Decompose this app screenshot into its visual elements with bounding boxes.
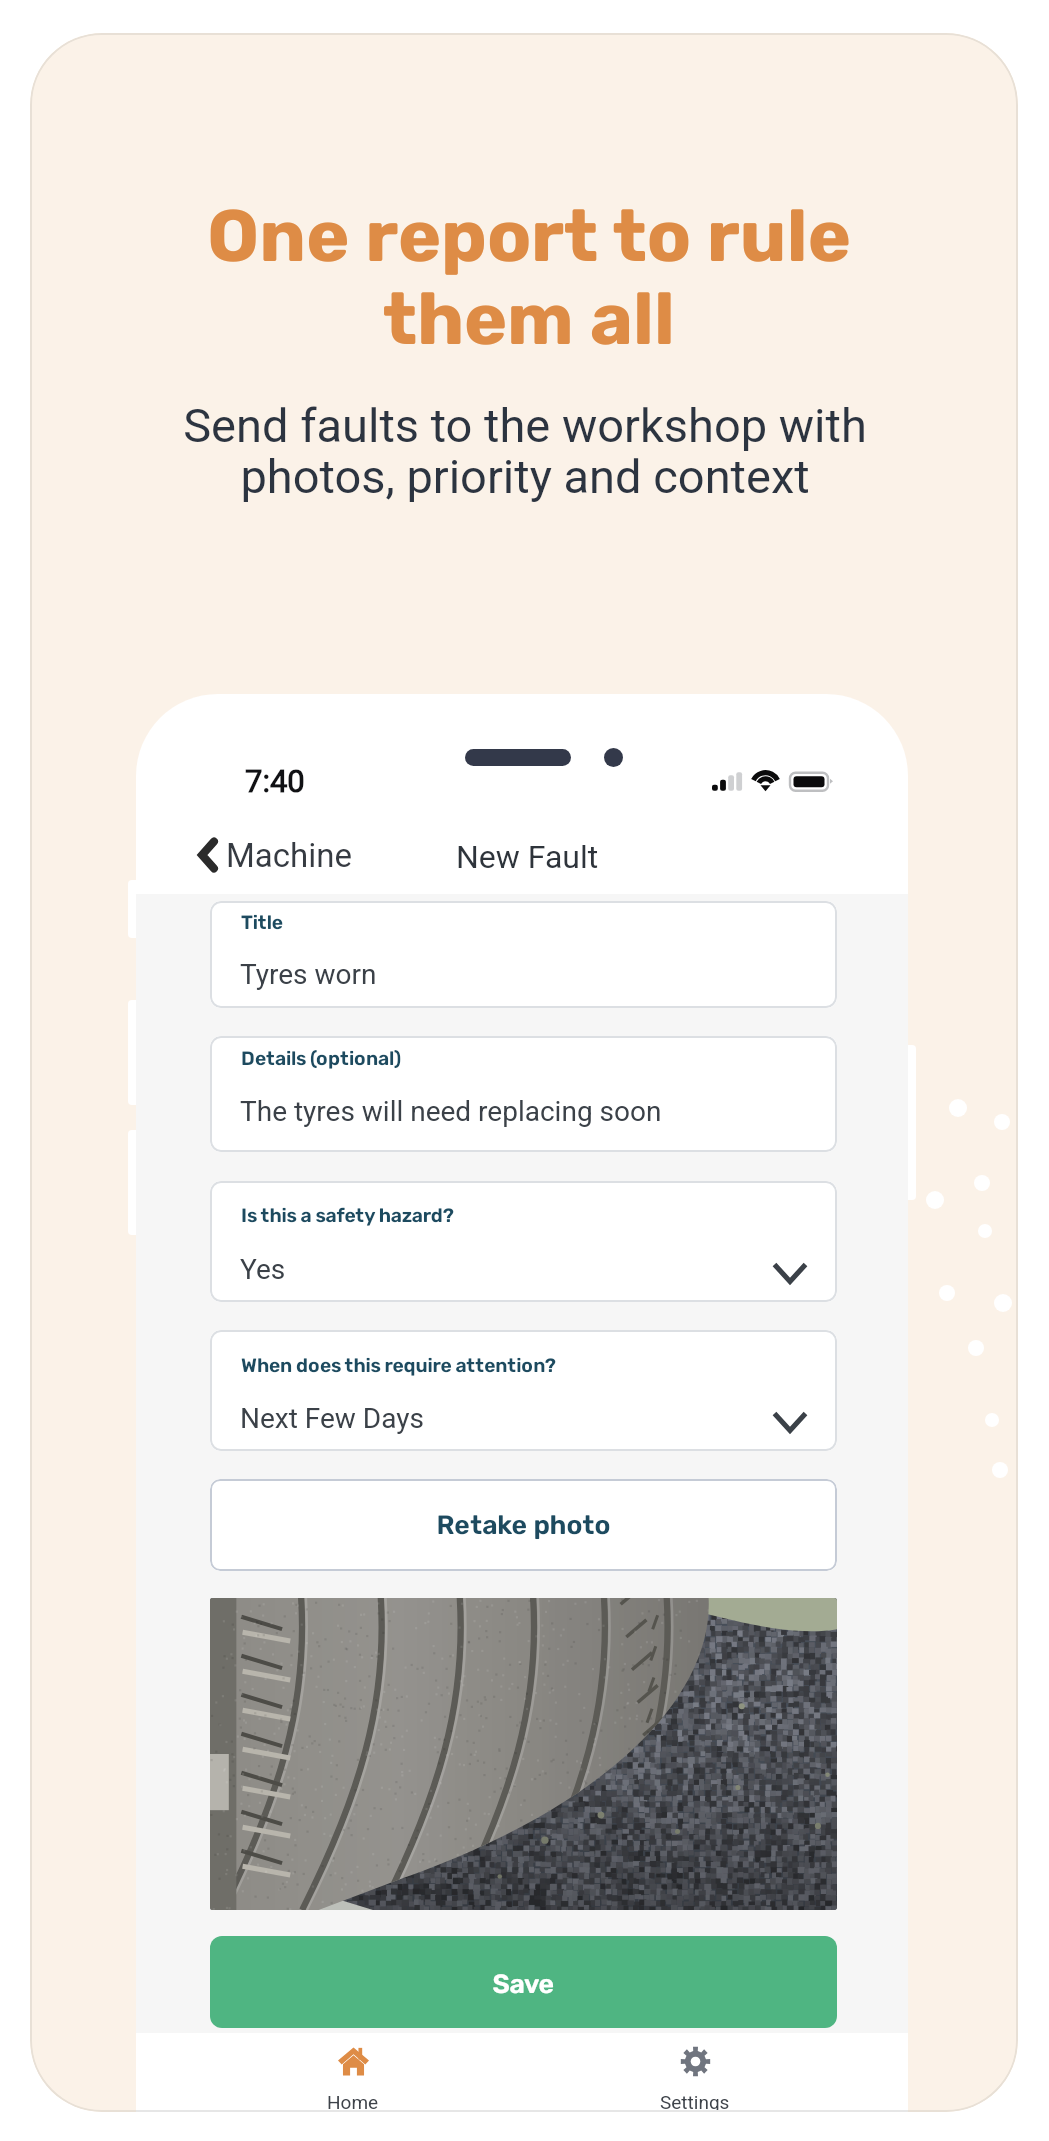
button[interactable]: Next Few Days bbox=[210, 1330, 837, 1451]
staticText: Machine bbox=[226, 836, 352, 875]
button[interactable]: Tyres worn bbox=[210, 901, 837, 1008]
staticText: New Fault bbox=[456, 838, 599, 876]
staticText: Home bbox=[327, 2091, 379, 2112]
button[interactable]: Home bbox=[268, 2040, 438, 2112]
staticText: Tyres worn bbox=[240, 958, 377, 991]
staticText: Settings bbox=[660, 2091, 730, 2112]
button[interactable]: Settings bbox=[610, 2040, 780, 2112]
button[interactable] bbox=[210, 1479, 837, 1571]
button[interactable]: Machine bbox=[190, 827, 358, 883]
staticText: Next Few Days bbox=[240, 1402, 424, 1435]
button[interactable]: Yes bbox=[210, 1181, 837, 1302]
other: Home bbox=[338, 2046, 369, 2077]
staticText: 7:40 bbox=[245, 763, 305, 799]
staticText: The tyres will need replacing soon bbox=[240, 1095, 662, 1128]
button[interactable]: The tyres will need replacing soon bbox=[210, 1036, 837, 1152]
staticText: Yes bbox=[240, 1253, 286, 1286]
staticText: Send faults to the workshop with photos,… bbox=[175, 398, 875, 505]
button[interactable] bbox=[210, 1936, 837, 2028]
other: Settings bbox=[680, 2046, 711, 2077]
